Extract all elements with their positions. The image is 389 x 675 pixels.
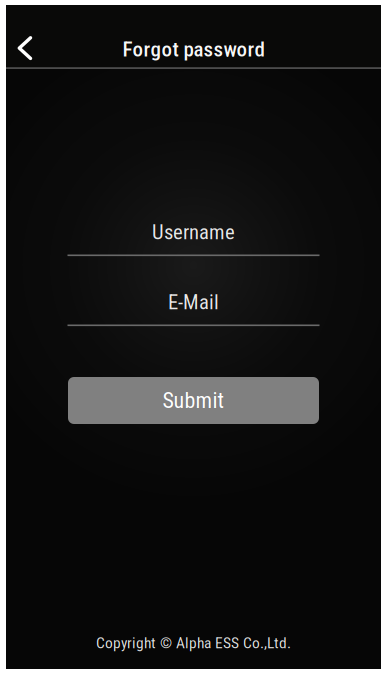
button[interactable]: Submit xyxy=(68,377,319,424)
staticText: E-Mail xyxy=(168,290,219,314)
staticText: Username xyxy=(152,220,235,244)
staticText: Copyright © Alpha ESS Co.,Ltd. xyxy=(96,634,291,652)
button[interactable]: Back xyxy=(2,26,48,70)
staticText: Submit xyxy=(162,388,224,413)
staticText: Forgot password xyxy=(122,37,264,62)
